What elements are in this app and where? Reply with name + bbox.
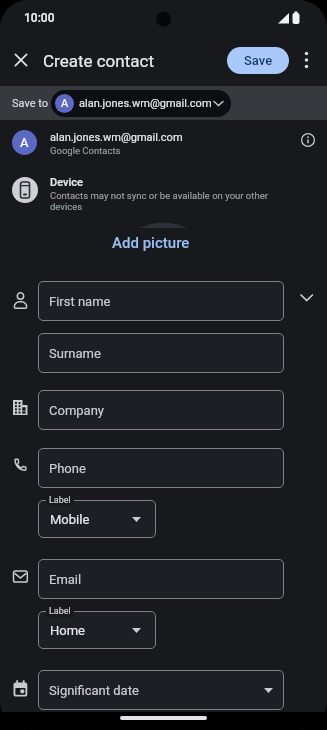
staticText: alan.jones.wm@gmail.com (50, 131, 183, 144)
button[interactable]: Surname (38, 333, 284, 373)
staticText: Device (50, 176, 83, 189)
staticText: Label (49, 606, 71, 617)
staticText: Mobile (50, 512, 90, 527)
staticText: Surname (49, 346, 101, 361)
staticText: 10:00 (24, 11, 55, 25)
button[interactable]: Mobile (38, 500, 156, 538)
button[interactable] (295, 48, 319, 72)
button[interactable]: Company (38, 390, 284, 430)
button[interactable]: Add picture (96, 232, 206, 254)
staticText: A (20, 135, 29, 150)
staticText: Label (49, 495, 71, 506)
staticText: Home (50, 623, 85, 638)
staticText: Contacts may not sync or be available on… (50, 190, 268, 212)
staticText: Company (49, 403, 104, 418)
button[interactable]: A (51, 90, 231, 117)
staticText: alan.jones.wm@gmail.com (79, 97, 212, 110)
staticText: Add picture (112, 234, 190, 252)
button[interactable] (292, 285, 322, 315)
button[interactable]: Device (0, 170, 327, 218)
button[interactable]: Phone (38, 448, 284, 488)
button[interactable]: Significant date (38, 670, 284, 710)
button[interactable]: First name (38, 281, 284, 321)
button[interactable]: Save (227, 47, 289, 74)
staticText: Save (244, 53, 273, 68)
staticText: A (61, 97, 69, 110)
staticText: Phone (49, 461, 86, 476)
staticText: First name (49, 294, 111, 309)
staticText: Save to (12, 97, 49, 110)
button[interactable] (9, 48, 33, 72)
staticText: Significant date (49, 683, 139, 698)
staticText: Email (49, 572, 82, 587)
staticText: Create contact (43, 51, 154, 71)
staticText: Google Contacts (50, 145, 121, 156)
button[interactable]: Email (38, 559, 284, 599)
button[interactable]: A (0, 122, 327, 168)
button[interactable]: Home (38, 611, 156, 649)
